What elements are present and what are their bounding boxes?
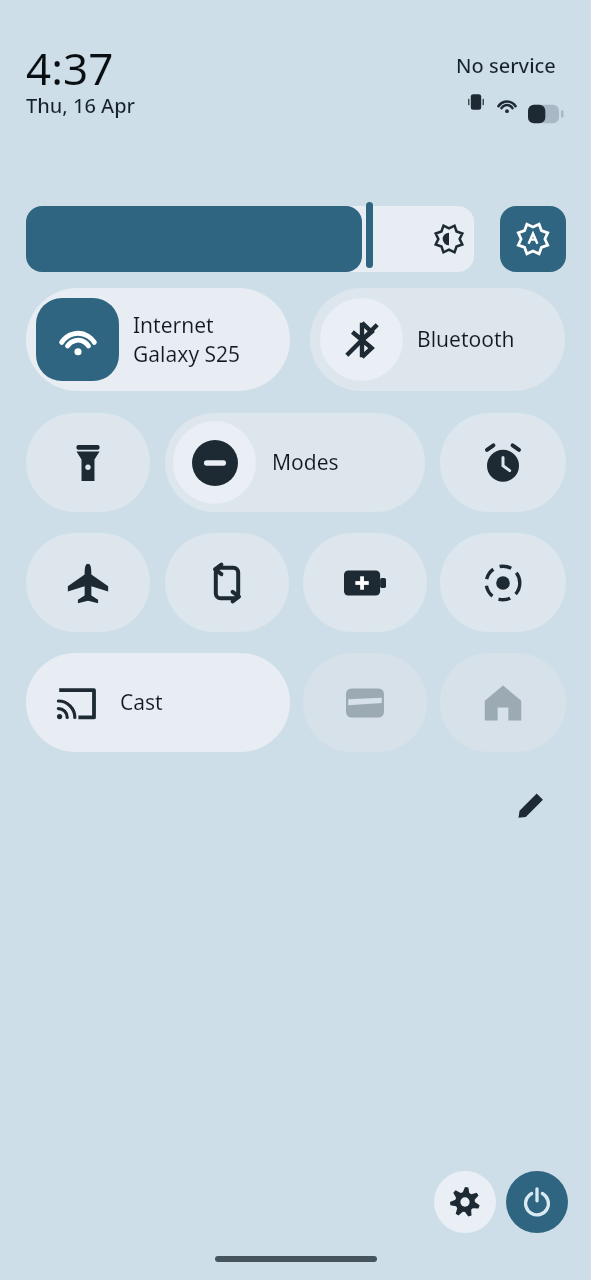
staticText: Bluetooth <box>417 325 515 354</box>
staticText: Modes <box>272 448 339 477</box>
button[interactable]: Auto rotate <box>165 533 289 632</box>
button[interactable]: Auto brightness <box>500 206 566 272</box>
button[interactable]: Cast <box>26 653 290 752</box>
button[interactable]: Settings <box>434 1171 496 1233</box>
button[interactable]: Edit quick settings <box>508 782 554 828</box>
button[interactable]: Power <box>506 1171 568 1233</box>
staticText: 4:37 <box>26 38 114 98</box>
button[interactable]: Location <box>440 533 566 632</box>
button[interactable]: Flashlight <box>26 413 150 512</box>
staticText: Cast <box>120 688 163 717</box>
button[interactable]: Alarm <box>440 413 566 512</box>
button[interactable]: Home controls <box>440 653 566 752</box>
button[interactable]: Airplane mode <box>26 533 150 632</box>
button[interactable]: Internet <box>26 288 290 391</box>
button[interactable]: Battery saver <box>303 533 427 632</box>
staticText: Galaxy S25 <box>133 340 241 369</box>
staticText: No service <box>456 52 556 79</box>
staticText: Thu, 16 Apr <box>26 92 136 119</box>
button[interactable]: Bluetooth <box>310 288 565 391</box>
button[interactable]: Brightness <box>26 206 474 272</box>
button[interactable]: Wallet <box>303 653 427 752</box>
button[interactable]: Modes <box>165 413 425 512</box>
staticText: Internet <box>133 311 214 340</box>
